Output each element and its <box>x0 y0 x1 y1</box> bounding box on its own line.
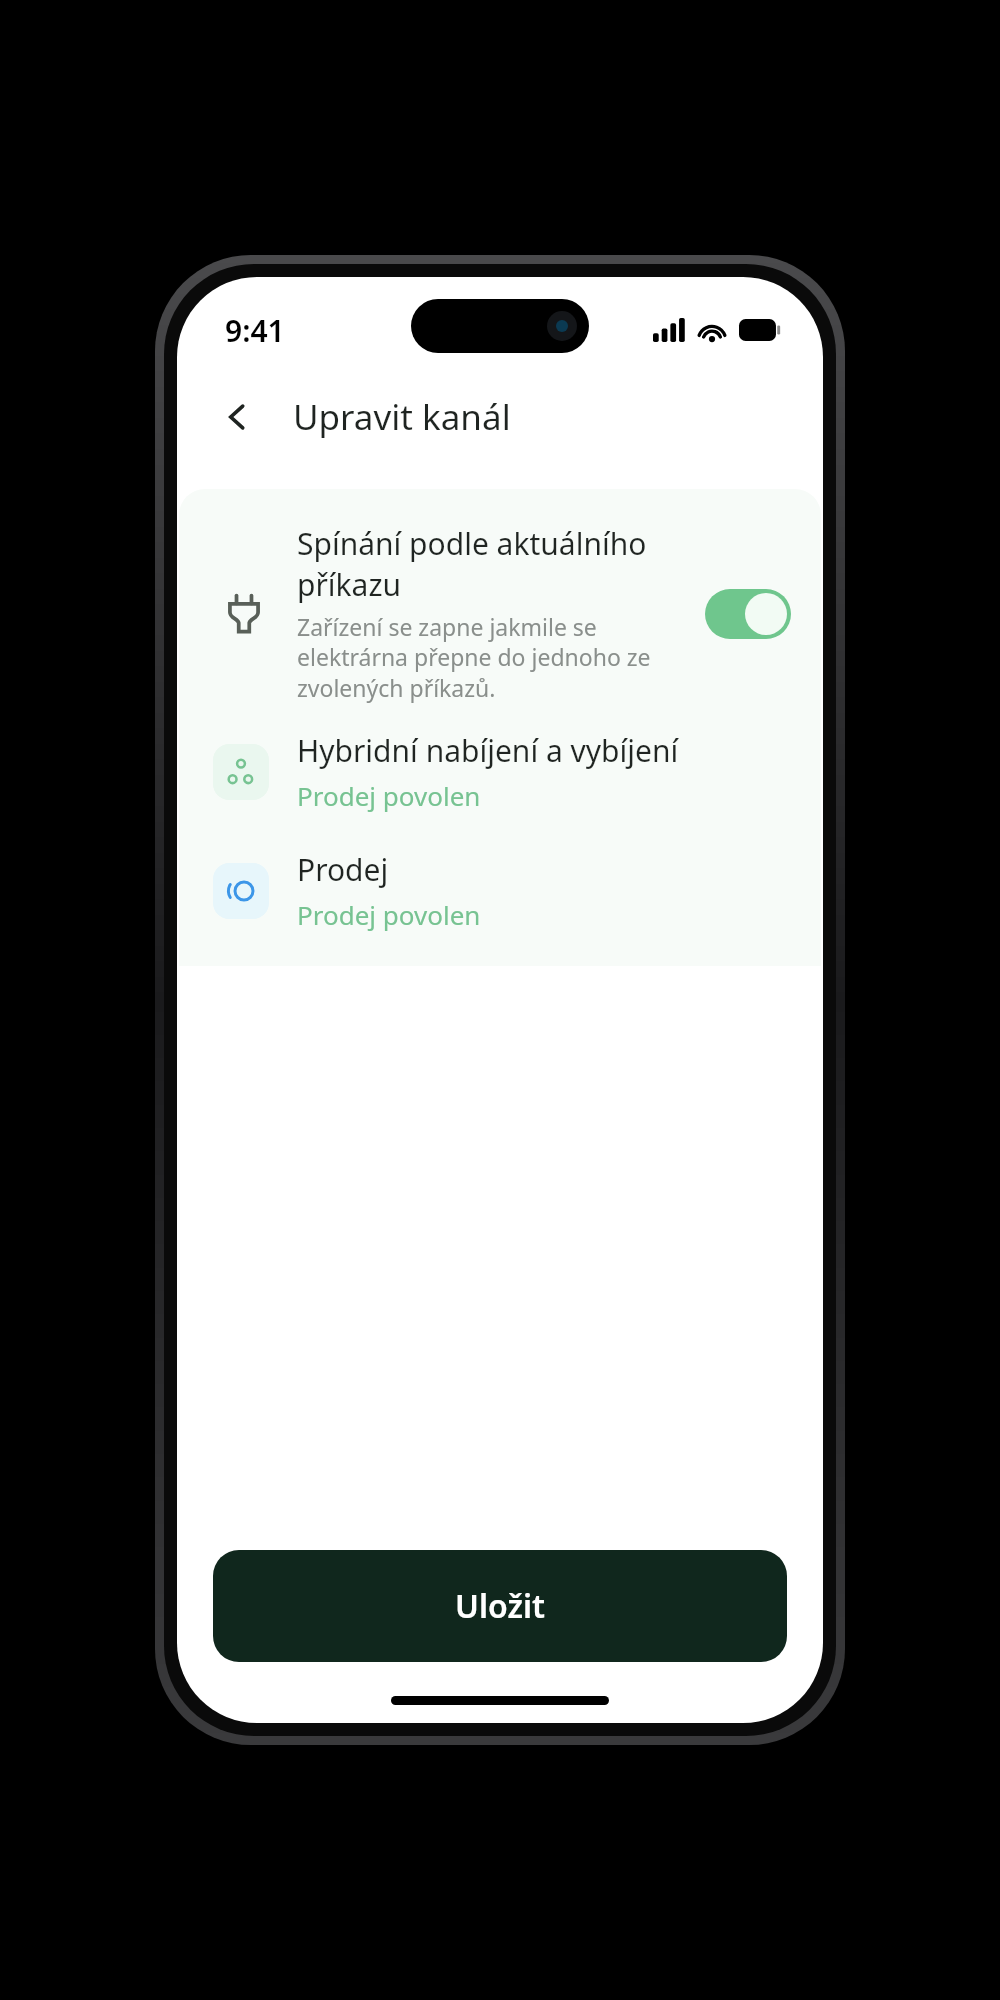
staticText: Upravit kanál <box>293 393 511 441</box>
staticText: Zařízení se zapne jakmile se elektrárna … <box>297 611 691 704</box>
button[interactable]: Prodej <box>179 849 821 932</box>
staticText: Spínání podle aktuálního příkazu <box>297 523 691 605</box>
button[interactable]: Back <box>203 383 271 451</box>
button[interactable]: Hybridní nabíjení a vybíjení <box>179 730 821 813</box>
button[interactable]: Uložit <box>213 1550 787 1662</box>
staticText: Prodej povolen <box>297 897 481 932</box>
staticText: 9:41 <box>225 310 285 351</box>
staticText: Prodej <box>297 849 389 890</box>
staticText: Prodej povolen <box>297 778 481 813</box>
button[interactable]: Toggle <box>705 589 791 639</box>
staticText: Uložit <box>455 1584 545 1628</box>
staticText: Hybridní nabíjení a vybíjení <box>297 730 679 771</box>
button[interactable]: Spínání podle aktuálního příkazu <box>179 523 821 704</box>
